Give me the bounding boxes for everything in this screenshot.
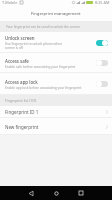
staticText: Fingerprint list (1/5): [5, 98, 37, 103]
staticText: Unlock screen: [5, 35, 35, 41]
staticText: Access app lock: [5, 79, 38, 85]
button[interactable]: Turn on: [96, 60, 108, 66]
staticText: screen is off: [5, 46, 24, 50]
button[interactable]: Home: [44, 186, 68, 200]
staticText: Enable safe before associating your fing…: [5, 65, 76, 69]
staticText: Your fingerprint can be used to unlock t…: [6, 25, 80, 29]
staticText: Enable app lock before associating your …: [5, 86, 82, 90]
button[interactable]: Unlock screen: [0, 32, 112, 53]
button[interactable]: Back: [19, 186, 43, 200]
button[interactable]: Recent apps: [69, 186, 93, 200]
staticText: T-Mobile: [2, 0, 18, 5]
staticText: Use fingerprint to unlock phone when: [5, 42, 62, 46]
button[interactable]: New fingerprint: [0, 118, 112, 135]
staticText: Fingerprint ID 1: [5, 109, 39, 115]
button[interactable]: Fingerprint ID 1: [0, 106, 112, 118]
staticText: Access safe: [5, 58, 29, 64]
button[interactable]: Access app lock: [0, 73, 112, 95]
button[interactable]: Access safe: [0, 53, 112, 73]
button[interactable]: Turn on: [96, 81, 108, 87]
button[interactable]: Turn off: [96, 40, 108, 46]
staticText: Fingerprint management: [31, 11, 81, 17]
staticText: New fingerprint: [5, 124, 39, 130]
staticText: 8:25 AM: [95, 0, 110, 5]
